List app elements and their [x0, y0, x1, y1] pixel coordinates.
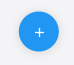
- button[interactable]: Add: [19, 11, 59, 51]
